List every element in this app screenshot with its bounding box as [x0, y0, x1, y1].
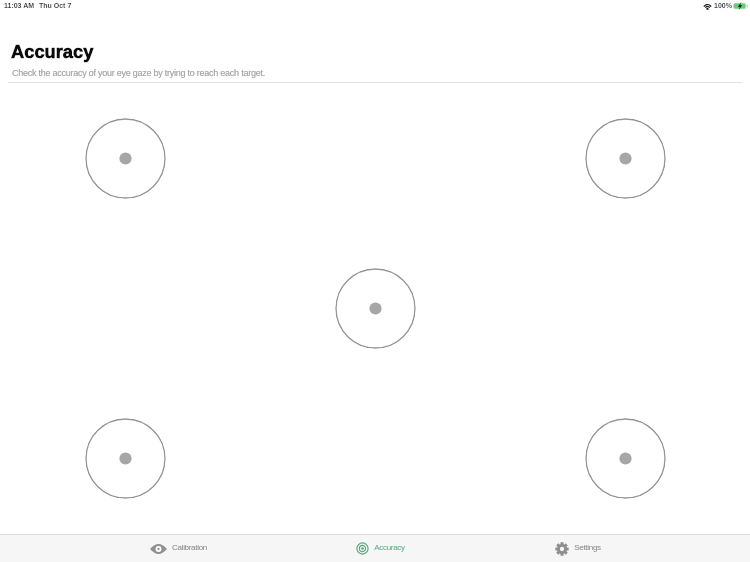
button[interactable]: Gaze target: [585, 418, 666, 499]
staticText: Check the accuracy of your eye gaze by t…: [12, 68, 265, 78]
button[interactable]: Gaze target: [85, 418, 166, 499]
staticText: Calibration: [172, 543, 207, 552]
button[interactable]: Gaze target: [585, 118, 666, 199]
staticText: Settings: [574, 543, 601, 552]
button[interactable]: Settings: [555, 535, 601, 562]
button[interactable]: Gaze target: [85, 118, 166, 199]
staticText: Accuracy: [11, 41, 94, 61]
button[interactable]: Accuracy: [356, 535, 405, 562]
button[interactable]: Gaze target: [335, 268, 416, 349]
button[interactable]: Calibration: [150, 535, 207, 562]
staticText: 100%: [714, 2, 732, 10]
staticText: Thu Oct 7: [39, 2, 72, 10]
staticText: Accuracy: [374, 543, 405, 552]
staticText: 11:03 AM: [4, 2, 35, 10]
